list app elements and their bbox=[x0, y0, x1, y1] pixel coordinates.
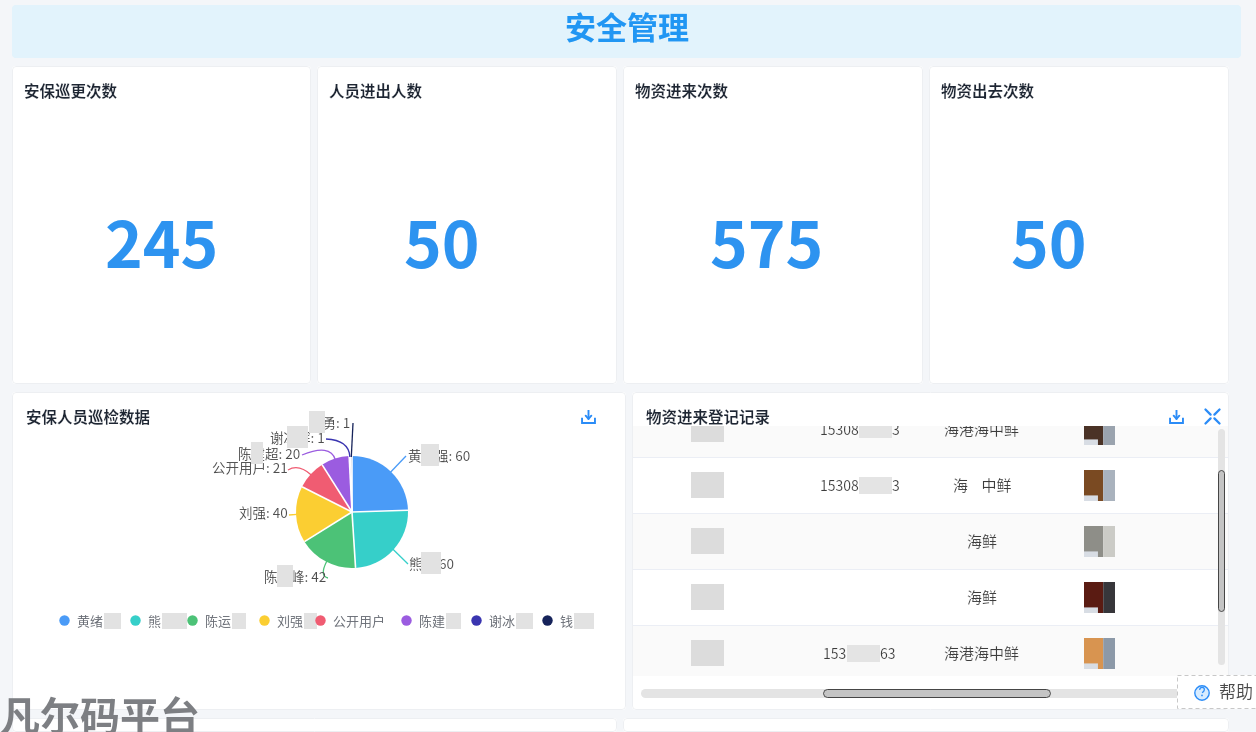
button[interactable]: 153 bbox=[632, 625, 1229, 676]
button[interactable]: 海鲜 bbox=[632, 569, 1229, 625]
button[interactable]: 安保巡更次数 bbox=[12, 66, 311, 384]
staticText: 刘强 bbox=[277, 611, 304, 630]
staticText: 50 bbox=[404, 194, 480, 287]
staticText: 陈远峰: 42 bbox=[264, 566, 327, 586]
button[interactable]: Download chart bbox=[579, 407, 598, 426]
staticText: 陈建 bbox=[419, 611, 446, 630]
button[interactable]: 15308 bbox=[632, 457, 1229, 513]
staticText: 3 bbox=[892, 426, 900, 439]
staticText: 物资出去次数 bbox=[941, 79, 1035, 101]
staticText: 63 bbox=[880, 643, 896, 663]
staticText: 50 bbox=[1011, 194, 1087, 287]
staticText: 15308 bbox=[820, 426, 859, 439]
staticText: 公开用户 bbox=[333, 611, 386, 630]
staticText: 谢冰 bbox=[489, 611, 516, 630]
button[interactable]: Fullscreen bbox=[1203, 407, 1222, 426]
staticText: 153 bbox=[823, 643, 847, 663]
button[interactable]: 安全管理 bbox=[12, 5, 1241, 58]
staticText: 物资进来登记记录 bbox=[646, 405, 771, 427]
staticText: 帮助 bbox=[1219, 678, 1253, 703]
staticText: 245 bbox=[105, 194, 219, 287]
button[interactable]: 帮助 bbox=[1177, 675, 1256, 709]
staticText: 刘强: 40 bbox=[239, 502, 288, 522]
staticText: 海鲜 bbox=[967, 586, 998, 608]
staticText: 李勇: 1 bbox=[309, 412, 351, 432]
staticText: 海鲜 bbox=[967, 530, 998, 552]
staticText: 安保巡更次数 bbox=[24, 79, 118, 101]
staticText: 海 中鲜 bbox=[953, 474, 1012, 496]
staticText: 熊 bbox=[148, 611, 162, 630]
staticText: 公开用户: 21 bbox=[212, 457, 288, 477]
staticText: 熊仕 60 bbox=[409, 553, 455, 573]
staticText: 575 bbox=[710, 194, 824, 287]
staticText: 陈运 bbox=[205, 611, 232, 630]
staticText: 3 bbox=[892, 475, 900, 495]
staticText: 15308 bbox=[820, 475, 859, 495]
staticText: 物资进来次数 bbox=[635, 79, 729, 101]
button[interactable]: 15308 bbox=[632, 426, 1229, 457]
staticText: 黄绪强: 60 bbox=[408, 445, 471, 465]
button[interactable]: Download table bbox=[1167, 407, 1186, 426]
staticText: 陈建超: 20 bbox=[238, 443, 301, 463]
button[interactable]: 物资出去次数 bbox=[929, 66, 1229, 384]
button[interactable]: 物资进来次数 bbox=[623, 66, 923, 384]
staticText: 安保人员巡检数据 bbox=[26, 405, 151, 427]
button[interactable]: 人员进出人数 bbox=[317, 66, 617, 384]
staticText: 钱 bbox=[560, 611, 574, 630]
staticText: 海港海中鲜 bbox=[944, 642, 1020, 664]
staticText: 黄绪 bbox=[77, 611, 104, 630]
staticText: 人员进出人数 bbox=[329, 79, 423, 101]
staticText: 海港海中鲜 bbox=[944, 426, 1020, 440]
button[interactable]: 海鲜 bbox=[632, 513, 1229, 569]
staticText: 谢冰辉: 1 bbox=[270, 427, 325, 447]
staticText: 安全管理 bbox=[565, 5, 689, 48]
staticText: 凡尔码平台 bbox=[0, 685, 200, 732]
